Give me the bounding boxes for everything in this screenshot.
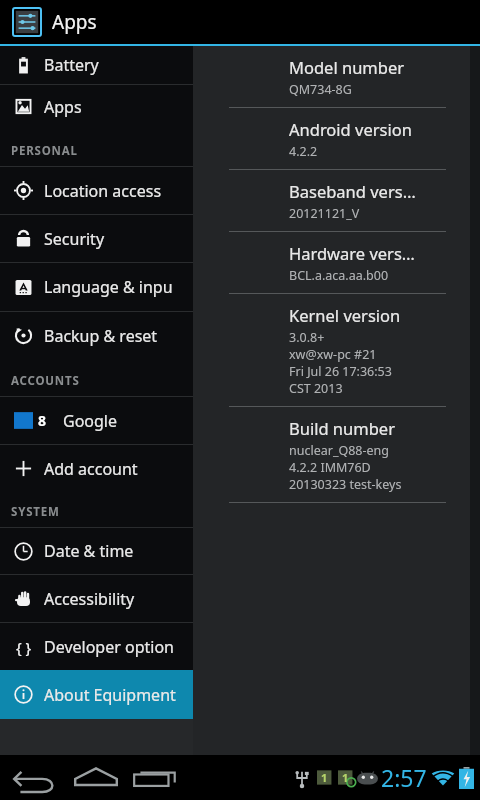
staticText: CST 2013: [289, 380, 343, 397]
staticText: Accessibility: [44, 588, 135, 610]
button[interactable]: Back: [10, 756, 62, 800]
staticText: Backup & reset: [44, 325, 158, 347]
button[interactable]: Recent apps: [130, 756, 182, 800]
button[interactable]: Language & inpu: [0, 263, 193, 311]
button[interactable]: { }: [0, 623, 193, 670]
button[interactable]: Battery: [0, 46, 193, 84]
staticText: PERSONAL: [11, 143, 78, 159]
staticText: Model number: [289, 56, 405, 78]
staticText: 1: [321, 770, 328, 785]
button[interactable]: Backup & reset: [0, 312, 193, 359]
staticText: 3.0.8+: [289, 329, 325, 346]
staticText: Fri Jul 26 17:36:53: [289, 363, 392, 380]
staticText: Date & time: [44, 540, 134, 562]
button[interactable]: Baseband vers…: [193, 170, 480, 231]
staticText: About Equipment: [44, 684, 176, 706]
staticText: QM734-8G: [289, 81, 352, 98]
staticText: 8: [38, 411, 47, 430]
staticText: Security: [44, 228, 105, 250]
staticText: Google: [63, 410, 118, 432]
staticText: Android version: [289, 118, 412, 140]
button[interactable]: Apps: [0, 85, 193, 128]
button[interactable]: 8: [0, 397, 193, 444]
staticText: SYSTEM: [11, 504, 60, 520]
button[interactable]: Date & time: [0, 528, 193, 574]
button[interactable]: Android version: [193, 108, 480, 169]
staticText: 20121121_V: [289, 205, 360, 222]
staticText: 20130323 test-keys: [289, 476, 402, 493]
staticText: Build number: [289, 417, 395, 439]
staticText: Kernel version: [289, 304, 401, 326]
staticText: BCL.a.aca.aa.b00: [289, 267, 389, 284]
button[interactable]: Home: [70, 756, 122, 800]
staticText: Apps: [52, 9, 97, 35]
button[interactable]: Accessibility: [0, 575, 193, 622]
button[interactable]: Build number: [193, 407, 480, 502]
button[interactable]: About Equipment: [0, 670, 193, 719]
button[interactable]: Kernel version: [193, 294, 480, 406]
staticText: Language & inpu: [44, 276, 173, 298]
button[interactable]: Hardware vers…: [193, 232, 480, 293]
button[interactable]: Security: [0, 215, 193, 262]
staticText: 4.2.2: [289, 143, 318, 160]
staticText: { }: [16, 637, 32, 656]
button[interactable]: Apps: [0, 0, 480, 44]
staticText: 2:57: [381, 762, 427, 793]
staticText: 4.2.2 IMM76D: [289, 459, 371, 476]
staticText: Baseband vers…: [289, 180, 416, 202]
staticText: Developer option: [44, 636, 174, 658]
staticText: xw@xw-pc #21: [289, 346, 377, 363]
staticText: ACCOUNTS: [11, 373, 80, 389]
button[interactable]: Model number: [193, 46, 480, 107]
staticText: Add account: [44, 458, 138, 480]
staticText: nuclear_Q88-eng: [289, 442, 390, 459]
staticText: Hardware vers…: [289, 242, 415, 264]
button[interactable]: Location access: [0, 167, 193, 214]
staticText: Location access: [44, 180, 162, 202]
staticText: Battery: [44, 54, 99, 76]
staticText: Apps: [44, 96, 82, 118]
staticText: 1: [342, 770, 349, 785]
button[interactable]: Add account: [0, 445, 193, 492]
